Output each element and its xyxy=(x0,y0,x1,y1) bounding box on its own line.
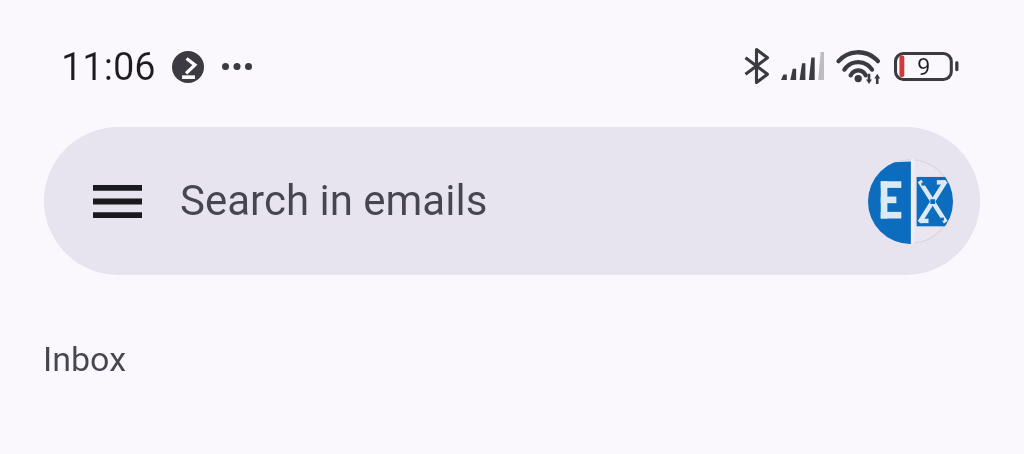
staticText: Search in emails xyxy=(180,176,488,225)
staticText: 11:06 xyxy=(61,45,156,90)
staticText: 9 xyxy=(917,53,931,81)
button[interactable]: Open navigation drawer xyxy=(72,156,162,246)
button[interactable]: Open navigation drawer xyxy=(44,127,980,275)
button[interactable]: Account xyxy=(862,153,958,249)
staticText: Inbox xyxy=(43,339,127,379)
